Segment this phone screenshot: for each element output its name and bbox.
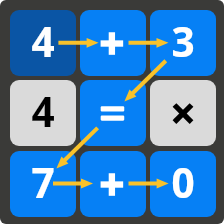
staticText: 4 bbox=[31, 14, 55, 69]
button[interactable]: Zero bbox=[150, 151, 216, 217]
button[interactable]: Four bbox=[10, 10, 76, 76]
button[interactable]: Plus bbox=[80, 151, 146, 217]
button[interactable]: Four key bbox=[10, 80, 76, 146]
staticText: 3 bbox=[171, 14, 195, 69]
staticText: 7 bbox=[31, 155, 55, 210]
button[interactable]: Equals bbox=[80, 80, 146, 146]
button[interactable]: Seven bbox=[10, 151, 76, 217]
button[interactable]: Three bbox=[150, 10, 216, 76]
button[interactable]: Plus bbox=[80, 10, 146, 76]
button[interactable]: Multiply bbox=[150, 80, 216, 146]
staticText: 4 bbox=[31, 84, 55, 139]
staticText: 0 bbox=[171, 155, 195, 210]
